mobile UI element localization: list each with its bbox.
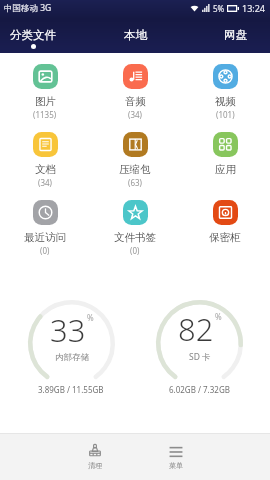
staticText: 菜单 <box>169 461 183 470</box>
staticText: (0) <box>130 245 140 256</box>
staticText: 视频 <box>215 95 236 108</box>
button[interactable]: 文档 <box>0 132 90 188</box>
staticText: (34) <box>38 177 52 188</box>
button[interactable]: 最近访问 <box>0 200 90 256</box>
staticText: (101) <box>216 109 235 120</box>
staticText: (0) <box>40 245 50 256</box>
button[interactable]: 网盘 <box>180 19 270 53</box>
button[interactable]: 音频 <box>90 64 180 120</box>
staticText: 压缩包 <box>119 163 151 176</box>
staticText: 内部存储 <box>55 352 89 363</box>
staticText: (63) <box>128 177 142 188</box>
staticText: % <box>87 312 94 323</box>
staticText: 本地 <box>124 28 147 42</box>
button[interactable]: 清理 <box>75 434 115 480</box>
staticText: 图片 <box>35 95 56 108</box>
staticText: 保密柜 <box>209 231 241 244</box>
staticText: SD 卡 <box>189 351 211 363</box>
staticText: 分类文件 <box>10 28 56 42</box>
button[interactable]: 保密柜 <box>180 200 270 256</box>
staticText: 最近访问 <box>24 231 66 244</box>
staticText: % <box>215 311 222 322</box>
staticText: 82 <box>178 308 214 350</box>
staticText: 33 <box>50 309 86 351</box>
staticText: (1135) <box>33 109 57 120</box>
staticText: 网盘 <box>224 28 247 42</box>
button[interactable]: 视频 <box>180 64 270 120</box>
staticText: 13:24 <box>242 2 266 14</box>
button[interactable]: 文件书签 <box>90 200 180 256</box>
staticText: 文档 <box>35 163 56 176</box>
staticText: 中国移动 3G <box>4 2 52 14</box>
button[interactable]: 本地 <box>90 19 180 53</box>
button[interactable]: 应用 <box>180 132 270 188</box>
staticText: 音频 <box>125 95 146 108</box>
staticText: 清理 <box>88 461 102 470</box>
button[interactable]: 菜单 <box>156 434 196 480</box>
button[interactable]: 图片 <box>0 64 90 120</box>
staticText: (34) <box>128 109 142 120</box>
button[interactable]: 压缩包 <box>90 132 180 188</box>
staticText: 5% <box>213 3 225 14</box>
staticText: 文件书签 <box>114 231 156 244</box>
staticText: 3.89GB / 11.55GB <box>38 384 104 395</box>
staticText: 6.02GB / 7.32GB <box>169 384 230 395</box>
button[interactable]: 分类文件 <box>0 19 90 53</box>
staticText: 应用 <box>215 163 236 176</box>
